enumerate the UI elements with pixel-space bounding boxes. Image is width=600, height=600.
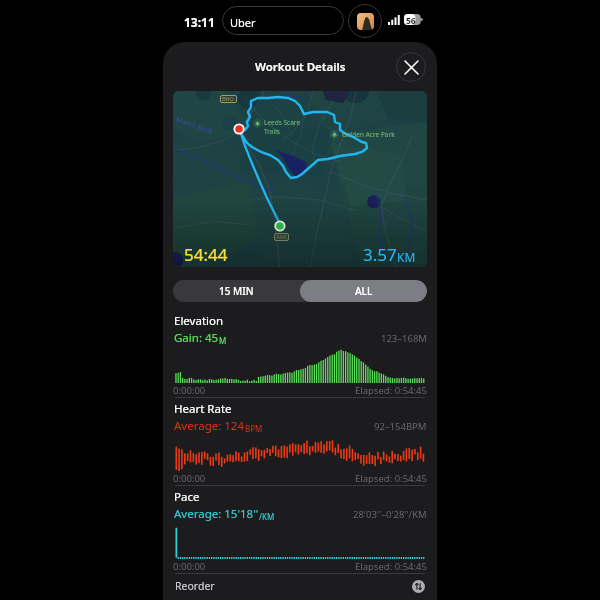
- staticText: 54:44: [184, 243, 228, 266]
- staticText: A66: [276, 233, 287, 241]
- button[interactable]: Uber live activity: [222, 6, 344, 35]
- staticText: 0:00:00: [173, 384, 206, 397]
- staticText: ALL: [355, 284, 373, 298]
- staticText: Elevation: [174, 313, 224, 329]
- button[interactable]: Elevation: [163, 310, 437, 398]
- staticText: Elapsed: 0:54:45: [355, 560, 427, 573]
- staticText: Workout Details: [255, 59, 346, 75]
- button[interactable]: Pace: [163, 486, 437, 574]
- button[interactable]: Heart Rate: [163, 398, 437, 486]
- staticText: 0:00:00: [173, 472, 206, 485]
- staticText: Elapsed: 0:54:45: [355, 384, 427, 397]
- button[interactable]: 15 MIN: [173, 280, 300, 302]
- button[interactable]: Close: [396, 52, 426, 82]
- staticText: 123–168M: [381, 332, 427, 345]
- staticText: Reorder: [175, 579, 215, 593]
- button[interactable]: Reorder: [175, 574, 425, 600]
- staticText: 3.57: [363, 243, 397, 266]
- staticText: 56: [406, 15, 416, 27]
- staticText: Uber: [230, 15, 256, 30]
- staticText: B6O: [222, 95, 235, 103]
- staticText: KM: [397, 249, 416, 265]
- staticText: 0:00:00: [173, 560, 206, 573]
- staticText: 15 MIN: [219, 284, 254, 298]
- staticText: Golden Acre Park: [342, 130, 395, 139]
- staticText: Leeds Scare Trails: [264, 118, 301, 136]
- staticText: 28'03''–0'28''/KM: [353, 508, 427, 521]
- button[interactable]: ALL: [300, 280, 427, 302]
- staticText: /KM: [259, 511, 275, 522]
- staticText: Average: 124: [174, 418, 245, 434]
- button[interactable]: Profile: [348, 4, 382, 38]
- staticText: Marsh Beck: [174, 115, 215, 137]
- staticText: M: [219, 335, 227, 346]
- button[interactable]: Route map: [173, 91, 427, 267]
- staticText: Gain: 45: [174, 330, 219, 346]
- staticText: 13:11: [184, 14, 215, 30]
- staticText: Pace: [174, 489, 200, 505]
- staticText: Average: 15'18'': [174, 506, 259, 522]
- staticText: Heart Rate: [174, 401, 232, 417]
- staticText: BPM: [245, 423, 263, 434]
- staticText: 92–154BPM: [374, 420, 427, 433]
- staticText: Elapsed: 0:54:45: [355, 472, 427, 485]
